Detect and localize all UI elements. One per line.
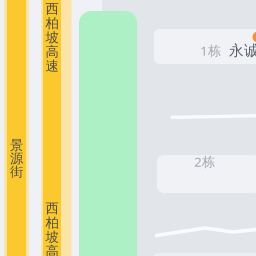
staticText: 西 xyxy=(45,1,58,17)
staticText: 街 xyxy=(10,163,23,180)
staticText: 高 xyxy=(45,44,58,60)
staticText: 永诚 xyxy=(229,41,256,59)
staticText: 高 xyxy=(45,243,58,256)
staticText: 源 xyxy=(10,150,23,167)
button[interactable]: 1栋 xyxy=(200,41,256,59)
staticText: 柏 xyxy=(45,15,58,31)
button[interactable]: 2栋 xyxy=(194,153,215,170)
staticText: 2栋 xyxy=(194,153,215,170)
staticText: 坡 xyxy=(45,29,58,46)
staticText: 西 xyxy=(45,200,58,217)
staticText: 坡 xyxy=(45,229,58,245)
staticText: 柏 xyxy=(45,214,58,231)
staticText: 1栋 xyxy=(200,42,221,59)
staticText: 景 xyxy=(10,137,23,153)
staticText: 速 xyxy=(45,58,58,74)
